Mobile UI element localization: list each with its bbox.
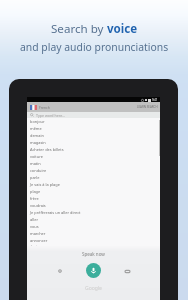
- staticText: voudrais: [30, 203, 46, 208]
- button[interactable]: Microphone: [86, 263, 101, 278]
- button[interactable]: aller: [27, 216, 160, 223]
- button[interactable]: voiture: [27, 153, 160, 160]
- button[interactable]: demain: [27, 132, 160, 139]
- staticText: bonjour: [30, 119, 45, 124]
- staticText: conduire: [30, 168, 47, 173]
- button[interactable]: vous: [27, 223, 160, 230]
- button[interactable]: Type word here...: [27, 112, 160, 118]
- button[interactable]: conduire: [27, 167, 160, 174]
- staticText: magasin: [30, 140, 46, 145]
- staticText: annoncer: [30, 238, 48, 243]
- staticText: aller: [30, 217, 38, 222]
- button[interactable]: Je préfèrerais un aller direct: [27, 209, 160, 216]
- staticText: Speak now: [82, 251, 105, 257]
- staticText: French: [39, 105, 50, 110]
- button[interactable]: frère: [27, 195, 160, 202]
- staticText: demain: [30, 133, 44, 138]
- staticText: frère: [30, 196, 39, 201]
- button[interactable]: matin: [27, 160, 160, 167]
- staticText: parle: [30, 175, 40, 180]
- staticText: Type word here...: [36, 113, 66, 118]
- staticText: Acheter des billets: [30, 147, 64, 152]
- button[interactable]: parle: [27, 174, 160, 181]
- staticText: marcher: [30, 231, 46, 236]
- button[interactable]: Acheter des billets: [27, 146, 160, 153]
- staticText: plage: [30, 189, 41, 194]
- button[interactable]: French: [27, 102, 160, 112]
- staticText: voiture: [30, 154, 43, 159]
- button[interactable]: marcher: [27, 230, 160, 237]
- button[interactable]: magasin: [27, 139, 160, 146]
- staticText: vous: [30, 224, 39, 229]
- staticText: Je vais à la plage: [30, 182, 60, 187]
- staticText: Search by: [51, 21, 107, 37]
- staticText: voice: [107, 21, 138, 37]
- staticText: Je préfèrerais un aller direct: [30, 210, 81, 215]
- staticText: écrire: [30, 244, 41, 246]
- staticText: Google: [85, 285, 102, 292]
- button[interactable]: Je vais à la plage: [27, 181, 160, 188]
- staticText: même: [30, 126, 42, 131]
- button[interactable]: voudrais: [27, 202, 160, 209]
- staticText: LEARN SEARCH: [137, 105, 158, 109]
- staticText: matin: [30, 161, 41, 166]
- button[interactable]: Settings: [56, 267, 64, 275]
- staticText: and play audio pronunciations: [20, 40, 169, 54]
- button[interactable]: bonjour: [27, 118, 160, 125]
- button[interactable]: annoncer: [27, 237, 160, 244]
- button[interactable]: plage: [27, 188, 160, 195]
- button[interactable]: même: [27, 125, 160, 132]
- staticText: 9:41: [152, 98, 158, 102]
- button[interactable]: Keyboard: [123, 267, 131, 275]
